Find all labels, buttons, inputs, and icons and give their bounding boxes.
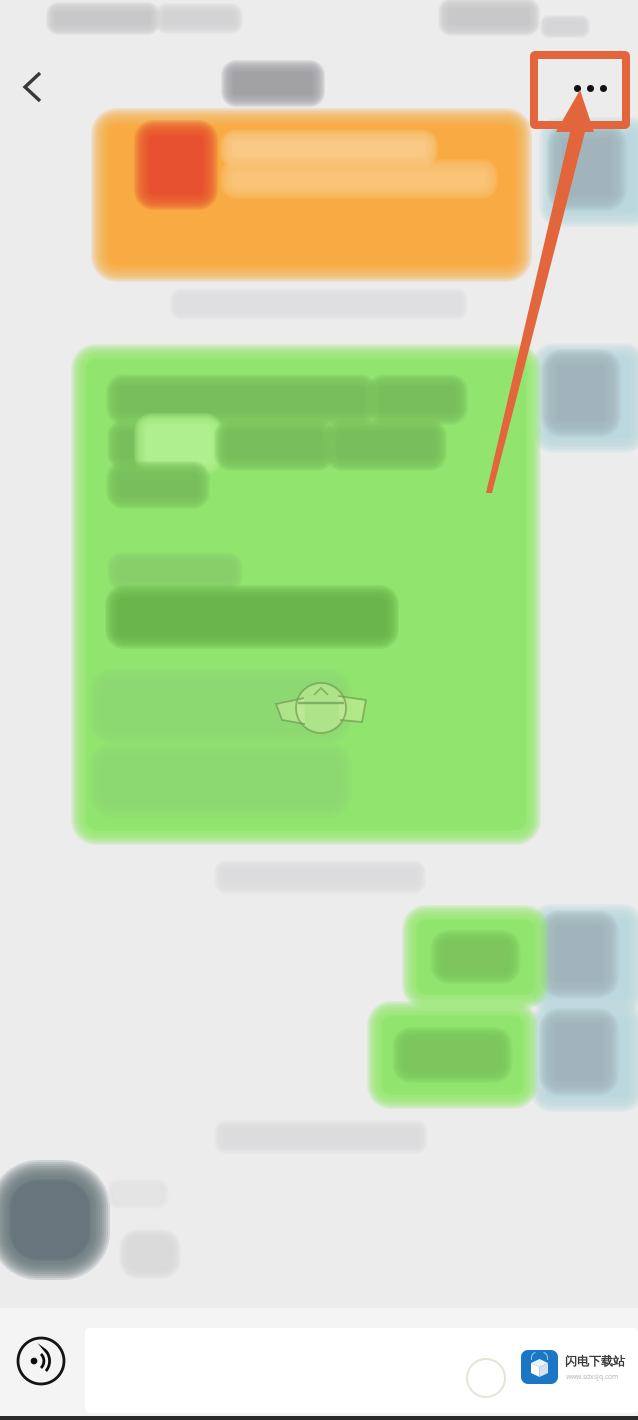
staticText: 闪电下载站	[565, 1354, 625, 1369]
button[interactable]: Voice message	[18, 1338, 64, 1384]
staticText: www.sdxsjq.com	[566, 1372, 618, 1381]
button[interactable]: More	[530, 51, 630, 129]
button[interactable]: Back	[0, 56, 74, 122]
